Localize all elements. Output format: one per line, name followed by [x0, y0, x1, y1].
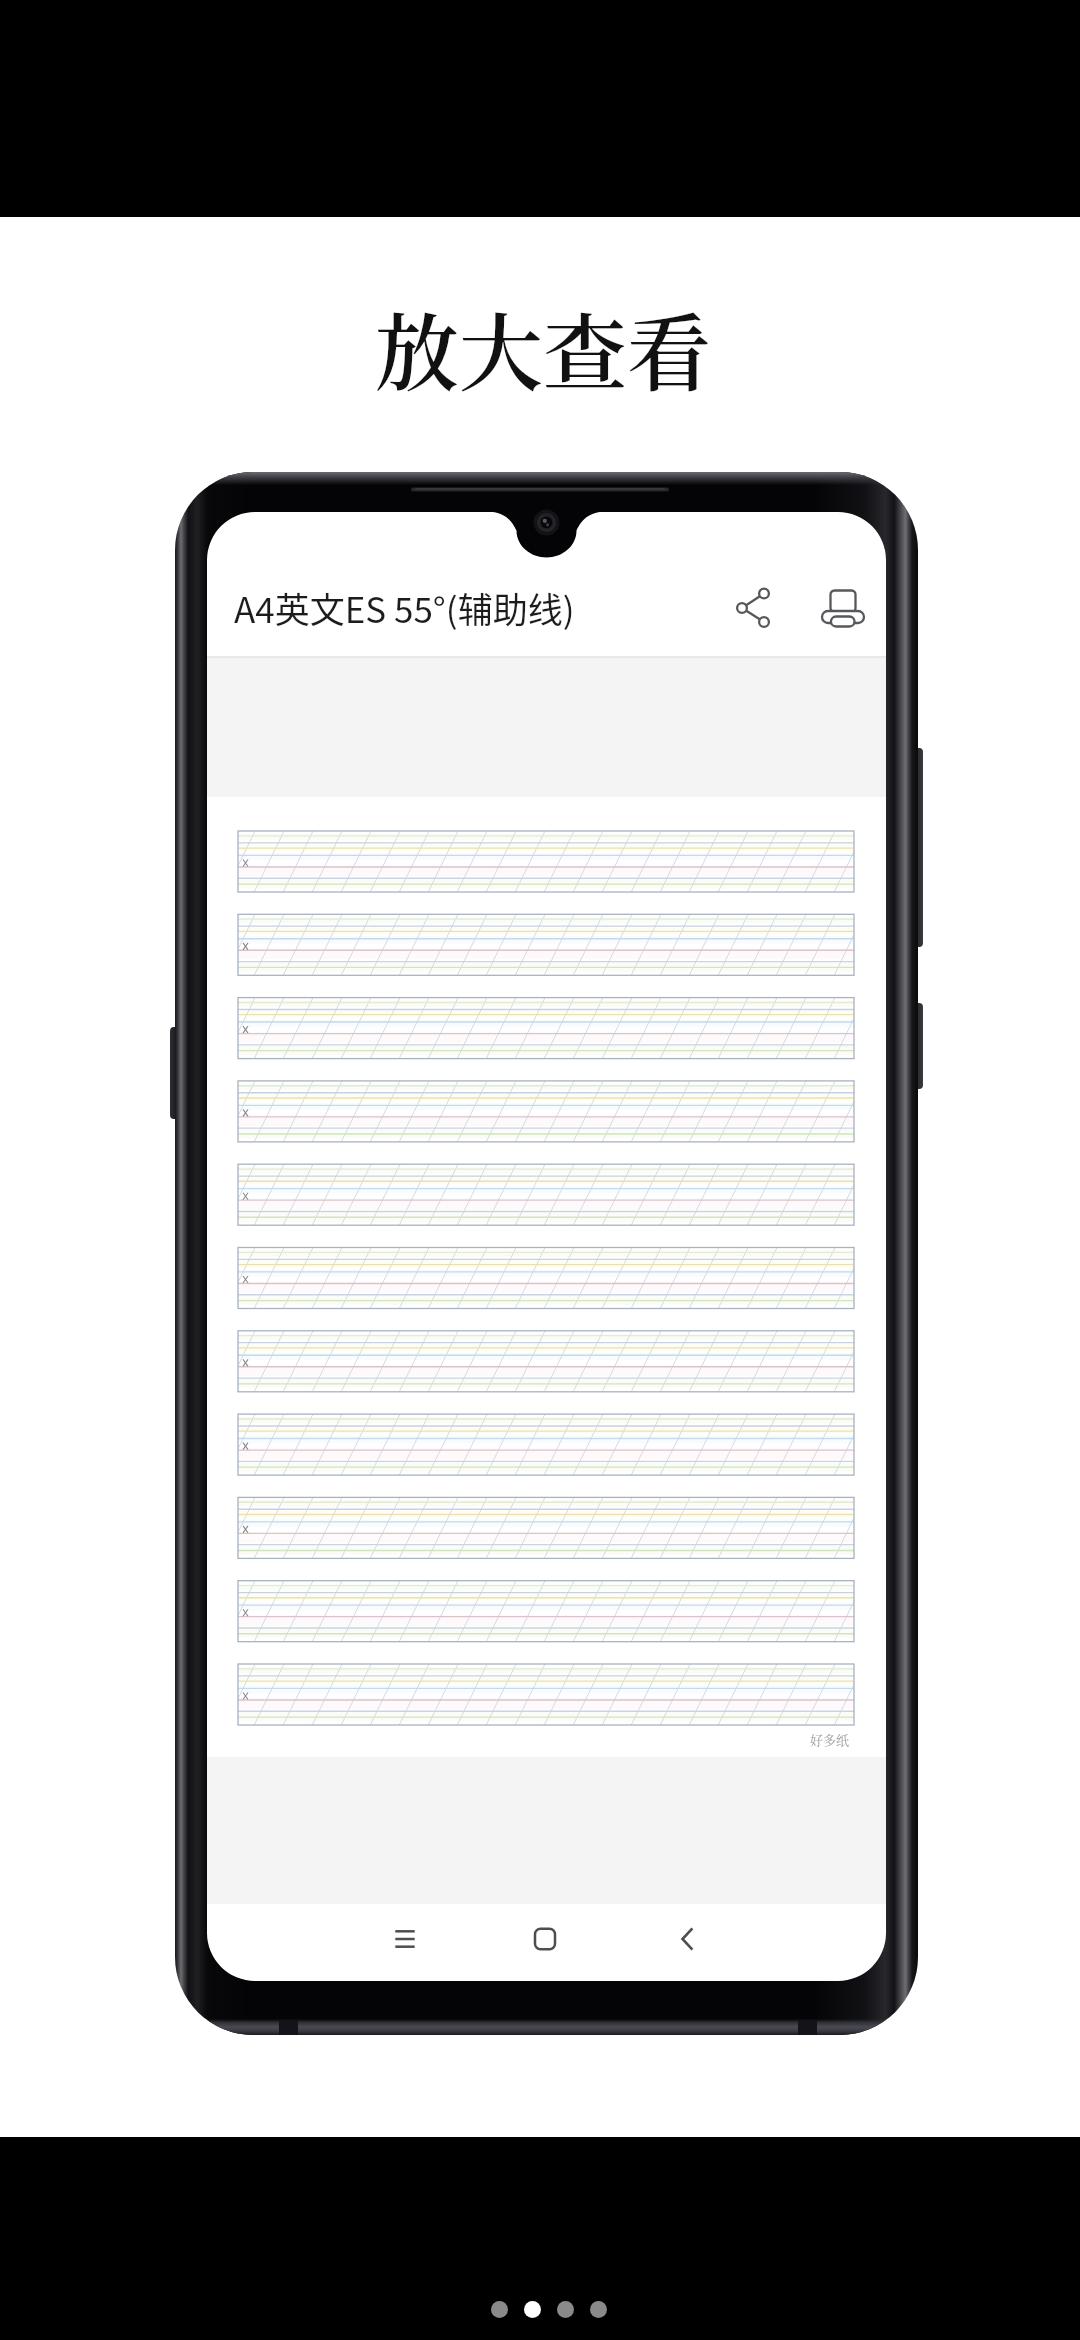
button[interactable]: Recent apps — [375, 1909, 435, 1969]
button[interactable]: Page 3 — [557, 2301, 574, 2318]
staticText: 放大查看 — [375, 287, 712, 408]
staticText: 好多纸 — [810, 1730, 850, 1749]
button[interactable]: Print — [813, 578, 873, 638]
button[interactable]: Page 2 — [524, 2301, 541, 2318]
button[interactable]: Share — [723, 578, 783, 638]
button[interactable]: Home — [515, 1909, 575, 1969]
button[interactable]: Page 4 — [590, 2301, 607, 2318]
button[interactable]: Back — [657, 1909, 717, 1969]
button[interactable]: A4英文ES 55°(辅助线) — [234, 578, 575, 636]
button[interactable]: Page 1 — [491, 2301, 508, 2318]
staticText: A4英文ES 55°(辅助线) — [234, 582, 575, 633]
